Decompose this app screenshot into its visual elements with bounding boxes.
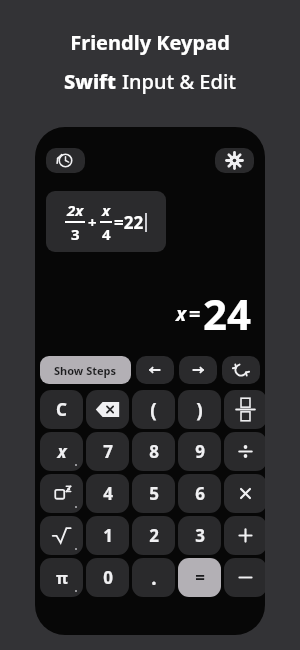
- staticText: =22: [114, 211, 144, 234]
- staticText: 5: [149, 482, 159, 505]
- staticText: 4: [102, 224, 111, 244]
- button[interactable]: Show Steps: [40, 356, 131, 384]
- staticText: C: [56, 398, 67, 421]
- staticText: 8: [149, 440, 159, 463]
- button[interactable]: 2: [132, 516, 175, 555]
- button[interactable]: Square: [40, 474, 83, 513]
- staticText: +: [88, 212, 97, 232]
- staticText: Swift: [64, 68, 122, 95]
- staticText: =: [189, 300, 201, 327]
- staticText: 7: [103, 440, 113, 463]
- button[interactable]: 7: [86, 432, 129, 471]
- button[interactable]: Next: [179, 356, 217, 384]
- staticText: π: [56, 567, 68, 589]
- staticText: ): [196, 397, 203, 423]
- button[interactable]: π: [40, 558, 83, 597]
- button[interactable]: C: [40, 390, 83, 429]
- staticText: 4: [103, 482, 113, 505]
- staticText: 24: [203, 285, 252, 342]
- staticText: (: [150, 397, 157, 423]
- staticText: x: [176, 301, 187, 327]
- staticText: .: [151, 565, 157, 591]
- staticText: 2: [149, 524, 159, 547]
- staticText: 0: [103, 566, 113, 589]
- staticText: x: [102, 200, 111, 220]
- button[interactable]: x: [40, 432, 83, 471]
- button[interactable]: Square root: [40, 516, 83, 555]
- button[interactable]: 9: [178, 432, 221, 471]
- button[interactable]: Backspace: [86, 390, 129, 429]
- button[interactable]: 2x: [46, 191, 166, 252]
- button[interactable]: 1: [86, 516, 129, 555]
- button[interactable]: History: [46, 148, 85, 173]
- button[interactable]: .: [132, 558, 175, 597]
- button[interactable]: Previous: [136, 356, 174, 384]
- button[interactable]: Settings: [215, 148, 254, 173]
- button[interactable]: Refresh: [222, 356, 260, 384]
- button[interactable]: 6: [178, 474, 221, 513]
- button[interactable]: Divide: [224, 432, 265, 471]
- button[interactable]: Multiply: [224, 474, 265, 513]
- button[interactable]: 8: [132, 432, 175, 471]
- button[interactable]: 4: [86, 474, 129, 513]
- staticText: Friendly Keypad: [70, 29, 230, 56]
- button[interactable]: 3: [178, 516, 221, 555]
- button[interactable]: Plus: [224, 516, 265, 555]
- staticText: =: [195, 566, 205, 589]
- button[interactable]: (: [132, 390, 175, 429]
- staticText: Show Steps: [54, 363, 117, 378]
- button[interactable]: =: [178, 558, 221, 597]
- button[interactable]: 0: [86, 558, 129, 597]
- button[interactable]: Fraction: [224, 390, 265, 429]
- button[interactable]: Minus: [224, 558, 265, 597]
- staticText: 9: [195, 440, 205, 463]
- button[interactable]: 5: [132, 474, 175, 513]
- staticText: 6: [195, 482, 205, 505]
- staticText: 3: [195, 524, 205, 547]
- staticText: x: [57, 440, 67, 463]
- staticText: 3: [71, 224, 80, 244]
- staticText: 1: [103, 524, 113, 547]
- button[interactable]: ): [178, 390, 221, 429]
- staticText: 2x: [67, 200, 84, 220]
- staticText: Input & Edit: [122, 68, 236, 95]
